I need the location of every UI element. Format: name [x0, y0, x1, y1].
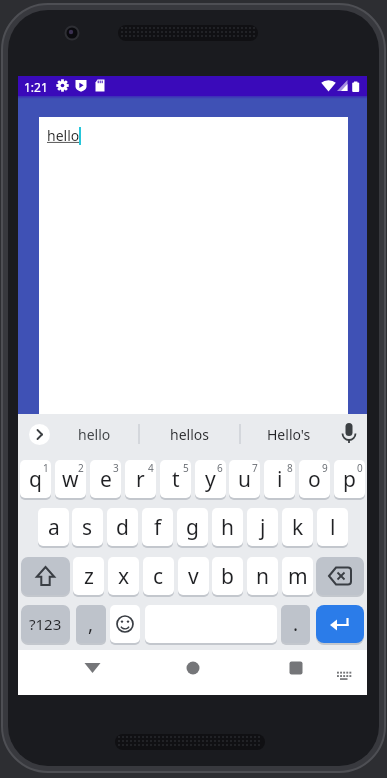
button[interactable]	[29, 424, 50, 445]
staticText: 5	[183, 461, 189, 473]
button[interactable]: o	[299, 460, 330, 498]
staticText: 3	[113, 461, 119, 473]
button[interactable]	[316, 605, 364, 643]
button[interactable]: r	[125, 460, 156, 498]
button[interactable]	[39, 117, 348, 414]
staticText: r	[136, 465, 145, 494]
button[interactable]	[173, 650, 213, 695]
button[interactable]: p	[334, 460, 365, 498]
staticText: x	[118, 562, 130, 591]
button[interactable]: b	[212, 557, 243, 595]
button[interactable]: Hello's	[240, 414, 338, 454]
button[interactable]: q	[20, 460, 51, 498]
staticText: s	[82, 513, 93, 542]
button[interactable]: k	[282, 508, 313, 546]
button[interactable]: ,	[76, 605, 106, 643]
button[interactable]: ?123	[21, 605, 70, 643]
staticText: 8	[287, 461, 293, 473]
staticText: f	[154, 513, 162, 542]
button[interactable]: u	[229, 460, 260, 498]
staticText: d	[116, 513, 129, 542]
staticText: hello	[78, 425, 111, 444]
staticText: y	[205, 465, 216, 494]
button[interactable]: v	[178, 557, 209, 595]
button[interactable]: x	[108, 557, 139, 595]
staticText: a	[48, 513, 60, 542]
staticText: 2	[78, 461, 84, 473]
staticText: 1	[43, 461, 49, 473]
staticText: q	[29, 465, 42, 494]
button[interactable]: n	[247, 557, 278, 595]
button[interactable]: s	[72, 508, 103, 546]
button[interactable]: i	[264, 460, 295, 498]
button[interactable]	[276, 650, 316, 695]
button[interactable]: z	[73, 557, 104, 595]
staticText: z	[84, 562, 94, 591]
button[interactable]	[316, 557, 364, 595]
button[interactable]: e	[90, 460, 121, 498]
staticText: t	[172, 465, 180, 494]
staticText: c	[153, 562, 164, 591]
staticText: .	[293, 611, 299, 637]
button[interactable]	[21, 557, 70, 595]
staticText: k	[292, 513, 304, 542]
button[interactable]: d	[107, 508, 138, 546]
staticText: e	[100, 465, 112, 494]
button[interactable]	[333, 650, 361, 695]
button[interactable]: .	[281, 605, 310, 643]
staticText: 9	[322, 461, 328, 473]
staticText: n	[256, 562, 269, 591]
staticText: 0	[357, 461, 363, 473]
staticText: Hello's	[267, 425, 311, 444]
staticText: l	[330, 513, 336, 542]
staticText: hello	[47, 126, 80, 145]
staticText: 7	[252, 461, 258, 473]
button[interactable]: c	[143, 557, 174, 595]
staticText: 4	[148, 461, 154, 473]
staticText: v	[188, 562, 199, 591]
staticText: h	[221, 513, 234, 542]
button[interactable]: g	[177, 508, 208, 546]
button[interactable]: hellos	[139, 414, 240, 454]
staticText: ,	[88, 611, 94, 637]
button[interactable]: t	[160, 460, 191, 498]
staticText: p	[343, 465, 356, 494]
button[interactable]: h	[212, 508, 243, 546]
button[interactable]: w	[55, 460, 86, 498]
button[interactable]: y	[195, 460, 226, 498]
button[interactable]: hello	[50, 414, 139, 454]
button[interactable]	[73, 650, 113, 695]
button[interactable]: a	[38, 508, 69, 546]
button[interactable]: f	[142, 508, 173, 546]
button[interactable]	[110, 605, 140, 643]
staticText: j	[260, 513, 266, 542]
button[interactable]: j	[247, 508, 278, 546]
staticText: o	[308, 465, 321, 494]
staticText: 6	[217, 461, 223, 473]
staticText: m	[288, 562, 308, 591]
button[interactable]: l	[317, 508, 348, 546]
staticText: b	[221, 562, 234, 591]
staticText: w	[62, 465, 79, 494]
button[interactable]: m	[282, 557, 313, 595]
staticText: g	[186, 513, 199, 542]
staticText: ?123	[29, 614, 62, 634]
staticText: u	[238, 465, 251, 494]
staticText: hellos	[170, 425, 209, 444]
staticText: 1:21	[24, 79, 48, 95]
staticText: i	[277, 465, 283, 494]
